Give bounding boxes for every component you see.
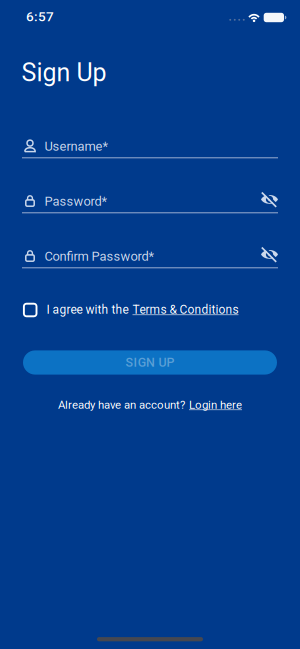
staticText: SIGN UP xyxy=(125,355,175,370)
staticText: 6:57 xyxy=(26,9,54,24)
button[interactable]: Show confirm password xyxy=(259,247,279,264)
staticText: Terms & Conditions xyxy=(132,302,238,317)
button[interactable]: Password* xyxy=(22,194,278,218)
button[interactable]: Show password xyxy=(259,192,279,209)
button[interactable]: Terms & Conditions xyxy=(132,302,238,317)
button[interactable]: I agree with the Terms & Conditions xyxy=(24,304,36,316)
button[interactable]: Confirm Password* xyxy=(22,249,278,273)
staticText: Username* xyxy=(44,139,108,154)
staticText: Password* xyxy=(44,194,107,209)
staticText: Already have an account? xyxy=(58,398,185,411)
button[interactable]: SIGN UP xyxy=(23,350,277,375)
button[interactable]: Login here xyxy=(189,398,242,411)
button[interactable]: Username* xyxy=(22,139,278,163)
staticText: Login here xyxy=(189,398,242,411)
staticText: Sign Up xyxy=(21,58,106,87)
staticText: I agree with the xyxy=(46,302,128,317)
staticText: Confirm Password* xyxy=(44,249,154,264)
